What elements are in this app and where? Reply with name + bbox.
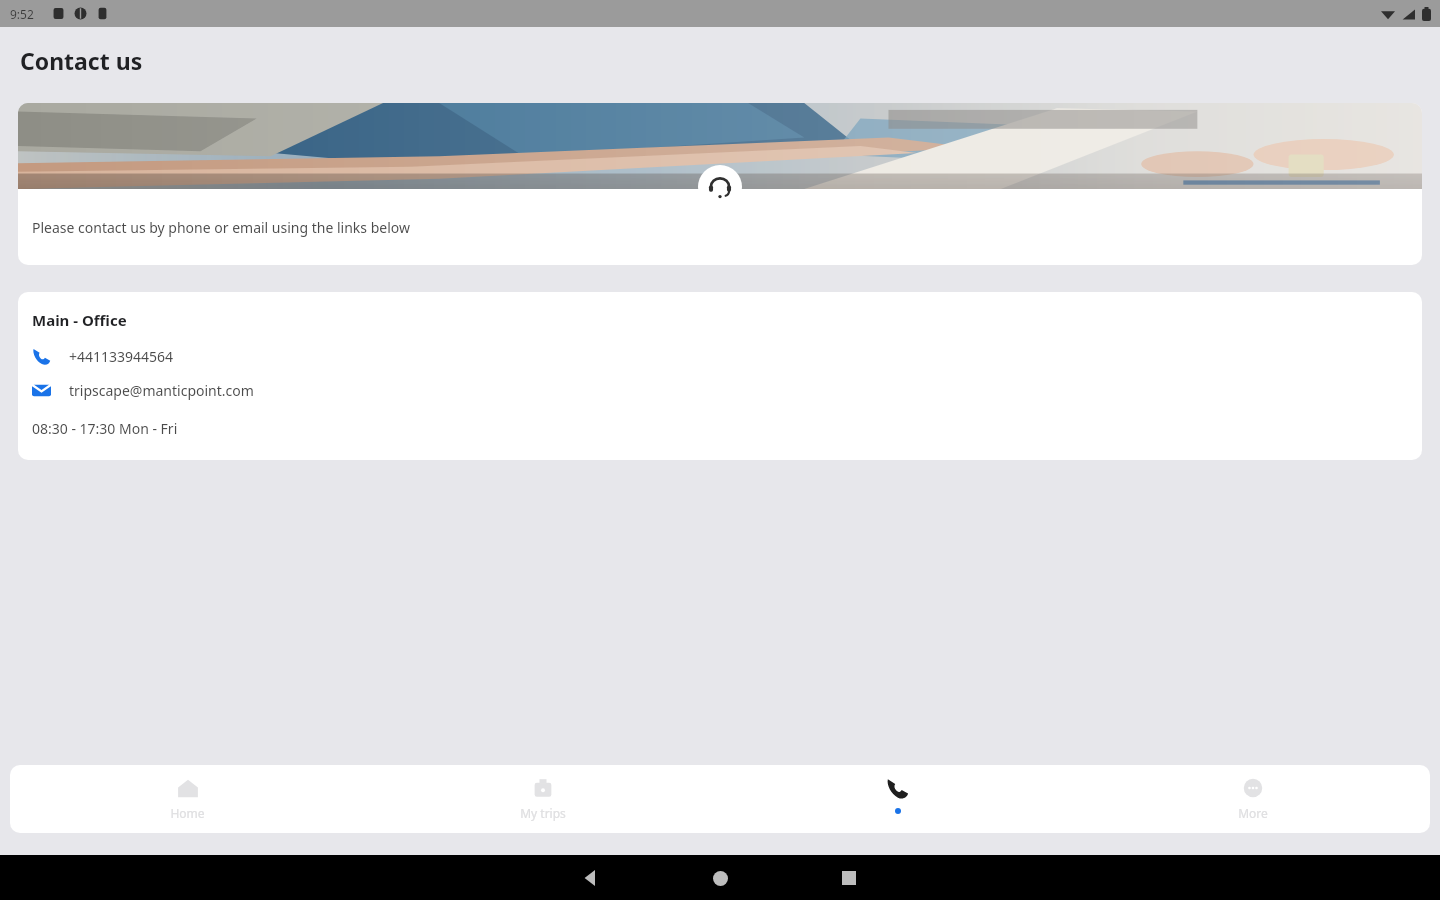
button[interactable]: Recent apps xyxy=(840,869,858,887)
button[interactable]: Contact us xyxy=(720,765,1075,833)
button[interactable]: Home xyxy=(710,868,730,888)
staticText: 9:52 xyxy=(10,6,34,22)
button[interactable]: Back xyxy=(582,869,600,887)
staticText: tripscape@manticpoint.com xyxy=(69,381,254,400)
staticText: Please contact us by phone or email usin… xyxy=(32,218,410,237)
staticText: Contact us xyxy=(20,45,143,76)
button[interactable]: My trips xyxy=(365,765,720,833)
staticText: +441133944564 xyxy=(69,347,174,366)
staticText: My trips xyxy=(520,805,566,821)
button[interactable]: tripscape@manticpoint.com xyxy=(32,378,254,403)
staticText: Home xyxy=(170,805,205,821)
button[interactable]: More xyxy=(1075,765,1430,833)
staticText: Main - Office xyxy=(32,310,127,330)
button[interactable]: Home xyxy=(10,765,365,833)
staticText: More xyxy=(1238,805,1268,821)
button[interactable]: +441133944564 xyxy=(32,344,174,369)
staticText: 08:30 - 17:30 Mon - Fri xyxy=(32,419,178,438)
